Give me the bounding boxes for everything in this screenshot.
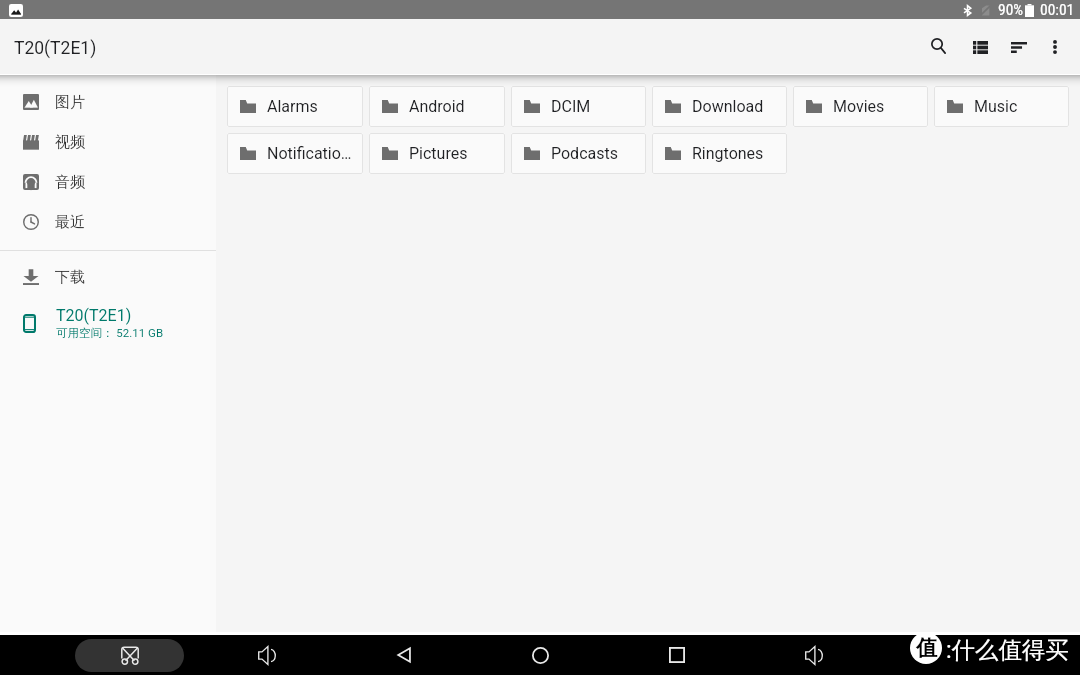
button[interactable]: Back (384, 635, 424, 675)
button[interactable]: 视频 (0, 122, 216, 162)
staticText: Download (692, 97, 764, 116)
staticText: T20(T2E1) (14, 38, 97, 59)
button[interactable]: Home (520, 635, 560, 675)
staticText: Pictures (409, 144, 468, 163)
staticText: Notificatio… (267, 144, 352, 163)
button[interactable]: More options (1035, 27, 1075, 67)
staticText: DCIM (551, 97, 591, 116)
button[interactable]: 音频 (0, 162, 216, 202)
button[interactable]: Music (934, 86, 1069, 127)
staticText: Android (409, 97, 465, 116)
staticText: Movies (833, 97, 885, 116)
staticText: T20(T2E1) (56, 306, 132, 325)
button[interactable]: 下载 (0, 257, 216, 297)
staticText: 90% (998, 1, 1024, 19)
staticText: 图片 (55, 93, 85, 112)
staticText: 00:01 (1040, 1, 1075, 19)
button[interactable]: Pictures (369, 133, 505, 174)
staticText: 视频 (55, 133, 85, 152)
button[interactable]: DCIM (511, 86, 646, 127)
button[interactable]: Notificatio… (227, 133, 363, 174)
button[interactable]: Android (369, 86, 505, 127)
button[interactable]: Grid view (960, 27, 1000, 67)
button[interactable]: T20(T2E1) (0, 299, 216, 347)
button[interactable]: Volume up (794, 635, 834, 675)
staticText: 可用空间： 52.11 GB (56, 326, 164, 340)
staticText: 音频 (55, 173, 85, 192)
button[interactable]: Search (918, 26, 958, 66)
staticText: Alarms (267, 97, 318, 116)
staticText: 值 (916, 635, 937, 661)
button[interactable]: Download (652, 86, 787, 127)
button[interactable]: Recents (657, 635, 697, 675)
button[interactable]: Ringtones (652, 133, 787, 174)
staticText: 最近 (55, 213, 85, 232)
button[interactable]: Podcasts (511, 133, 646, 174)
staticText: Podcasts (551, 144, 618, 163)
staticText: Ringtones (692, 144, 764, 163)
button[interactable]: 图片 (0, 82, 216, 122)
button[interactable]: Movies (793, 86, 928, 127)
button[interactable]: 最近 (0, 202, 216, 242)
button[interactable]: Alarms (227, 86, 363, 127)
button[interactable]: Screenshot (75, 639, 184, 672)
button[interactable]: Sort (999, 27, 1039, 67)
button[interactable]: Volume down (247, 635, 287, 675)
staticText: :什么值得买 (946, 635, 1069, 664)
staticText: 下载 (55, 268, 85, 287)
staticText: Music (974, 97, 1018, 116)
